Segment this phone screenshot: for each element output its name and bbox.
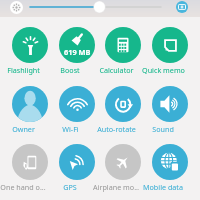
button[interactable]: Airplane mo... [100,144,146,194]
button[interactable]: Auto-rotate [100,86,146,136]
staticText: GPS [63,182,77,192]
staticText: Flashlight [7,65,40,75]
button[interactable]: Wi-Fi [54,86,100,136]
button[interactable]: Auto brightness [176,1,188,13]
button[interactable]: Brightness slider [28,0,164,14]
staticText: Boost [60,65,80,75]
button[interactable]: Flashlight [7,27,53,77]
button[interactable]: Owner [7,86,53,136]
staticText: Owner [12,124,35,134]
staticText: Auto-rotate [97,124,136,134]
staticText: Wi-Fi [62,124,79,134]
button[interactable]: GPS [54,144,100,194]
button[interactable]: Brightness [10,1,23,14]
staticText: Calculator [99,65,134,75]
button[interactable]: Sound [147,86,193,136]
button[interactable]: 619 MB [54,27,100,77]
button[interactable]: Calculator [100,27,146,77]
button[interactable]: Mobile data [147,144,193,194]
staticText: Quick memo [142,65,185,75]
staticText: 619 MB [64,47,91,57]
button[interactable]: Quick memo [147,27,193,77]
staticText: Sound [152,124,174,134]
button[interactable]: One hand o... [7,144,53,194]
staticText: Airplane mo... [93,182,139,192]
staticText: Mobile data [143,182,183,192]
staticText: One hand o... [0,182,46,192]
